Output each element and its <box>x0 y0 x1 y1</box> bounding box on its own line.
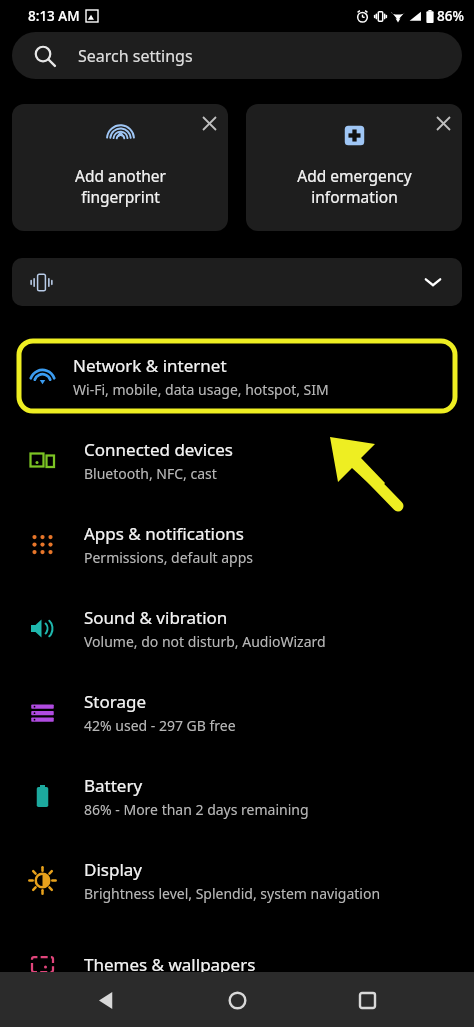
button[interactable]: Home <box>214 977 260 1023</box>
staticText: 86% <box>437 7 464 25</box>
staticText: Connected devices <box>84 438 234 461</box>
staticText: 8:13 AM <box>28 7 80 25</box>
button[interactable]: Themes & wallpapers <box>0 929 474 999</box>
button[interactable]: Dismiss <box>196 110 222 136</box>
button[interactable]: Connected devices <box>0 425 474 495</box>
staticText: information <box>311 186 398 207</box>
staticText: Battery <box>84 774 143 797</box>
button[interactable]: Vibration mode, expand <box>12 258 462 306</box>
button[interactable]: Dismiss <box>12 104 228 231</box>
button[interactable]: Battery <box>0 761 474 831</box>
staticText: Brightness level, Splendid, system navig… <box>84 884 381 903</box>
staticText: 42% used - 297 GB free <box>84 716 236 735</box>
staticText: Permissions, default apps <box>84 548 254 567</box>
staticText: Display <box>84 858 142 881</box>
staticText: Search settings <box>78 45 193 67</box>
staticText: Apps & notifications <box>84 522 244 545</box>
staticText: fingerprint <box>81 186 160 207</box>
button[interactable]: Back <box>84 977 130 1023</box>
staticText: Sound & vibration <box>84 606 228 629</box>
staticText: Volume, do not disturb, AudioWizard <box>84 632 326 651</box>
staticText: Bluetooth, NFC, cast <box>84 464 217 483</box>
button[interactable]: Sound & vibration <box>0 593 474 663</box>
button[interactable]: Network & internet <box>19 341 455 411</box>
button[interactable]: Recents <box>344 977 390 1023</box>
button[interactable]: Dismiss <box>246 104 462 231</box>
button[interactable]: Dismiss <box>430 110 456 136</box>
staticText: 86% - More than 2 days remaining <box>84 800 309 819</box>
staticText: Themes & wallpapers <box>84 953 256 976</box>
staticText: Storage <box>84 690 147 713</box>
button[interactable]: Storage <box>0 677 474 747</box>
staticText: Add another <box>75 165 166 186</box>
button[interactable]: Display <box>0 845 474 915</box>
button[interactable]: Search settings <box>12 32 462 79</box>
button[interactable]: Apps & notifications <box>0 509 474 579</box>
staticText: Wi-Fi, mobile, data usage, hotspot, SIM <box>73 380 329 399</box>
staticText: Add emergency <box>297 165 412 186</box>
staticText: Network & internet <box>73 354 227 377</box>
